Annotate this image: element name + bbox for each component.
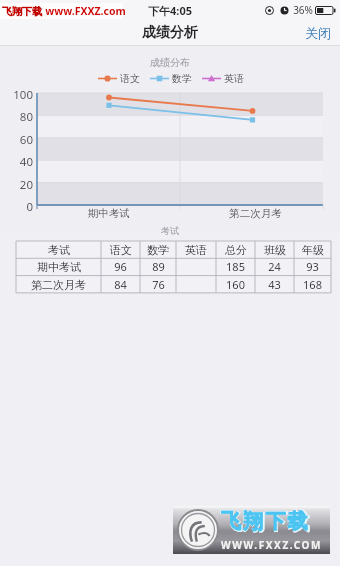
staticText: 语文 [120,72,140,85]
staticText: 89 [152,259,165,274]
staticText: 80 [19,109,33,125]
staticText: 第二次月考 [31,278,86,292]
staticText: 84 [114,277,127,292]
staticText: 下午4:05 [148,3,192,18]
staticText: 期中考试 [88,207,130,220]
staticText: 关闭 [305,25,331,41]
staticText: 185 [226,259,245,274]
staticText: 96 [114,259,127,274]
staticText: 班级 [264,243,286,257]
staticText: 第二次月考 [229,207,282,220]
staticText: 20 [19,177,33,193]
staticText: 60 [19,132,33,148]
staticText: 43 [268,277,281,292]
staticText: 年级 [302,243,324,257]
staticText: 飞翔下载 [221,509,310,534]
staticText: 40 [19,154,33,170]
staticText: 24 [268,259,281,274]
staticText: 数学 [172,72,192,85]
staticText: 168 [303,277,322,292]
staticText: 成绩分布 [150,56,190,69]
staticText: www.FXXZ.com [45,4,126,18]
staticText: 100 [13,87,33,103]
staticText: WWW.FXXZ.COM [221,538,323,552]
staticText: 英语 [224,72,244,85]
staticText: 76 [152,277,165,292]
staticText: 语文 [110,243,132,257]
staticText: 36% [293,3,313,17]
button[interactable]: 关闭 [296,21,340,45]
staticText: 成绩分析 [142,24,198,42]
staticText: 飞翔下载 [220,508,310,536]
staticText: 期中考试 [37,260,81,274]
staticText: 93 [306,259,319,274]
staticText: 飞翔下载 [2,5,42,18]
staticText: 考试 [161,225,179,236]
staticText: 0 [26,199,33,215]
staticText: 总分 [225,243,247,257]
staticText: 数学 [147,243,169,257]
staticText: 英语 [185,243,207,257]
staticText: 160 [226,277,245,292]
staticText: 考试 [48,243,70,257]
